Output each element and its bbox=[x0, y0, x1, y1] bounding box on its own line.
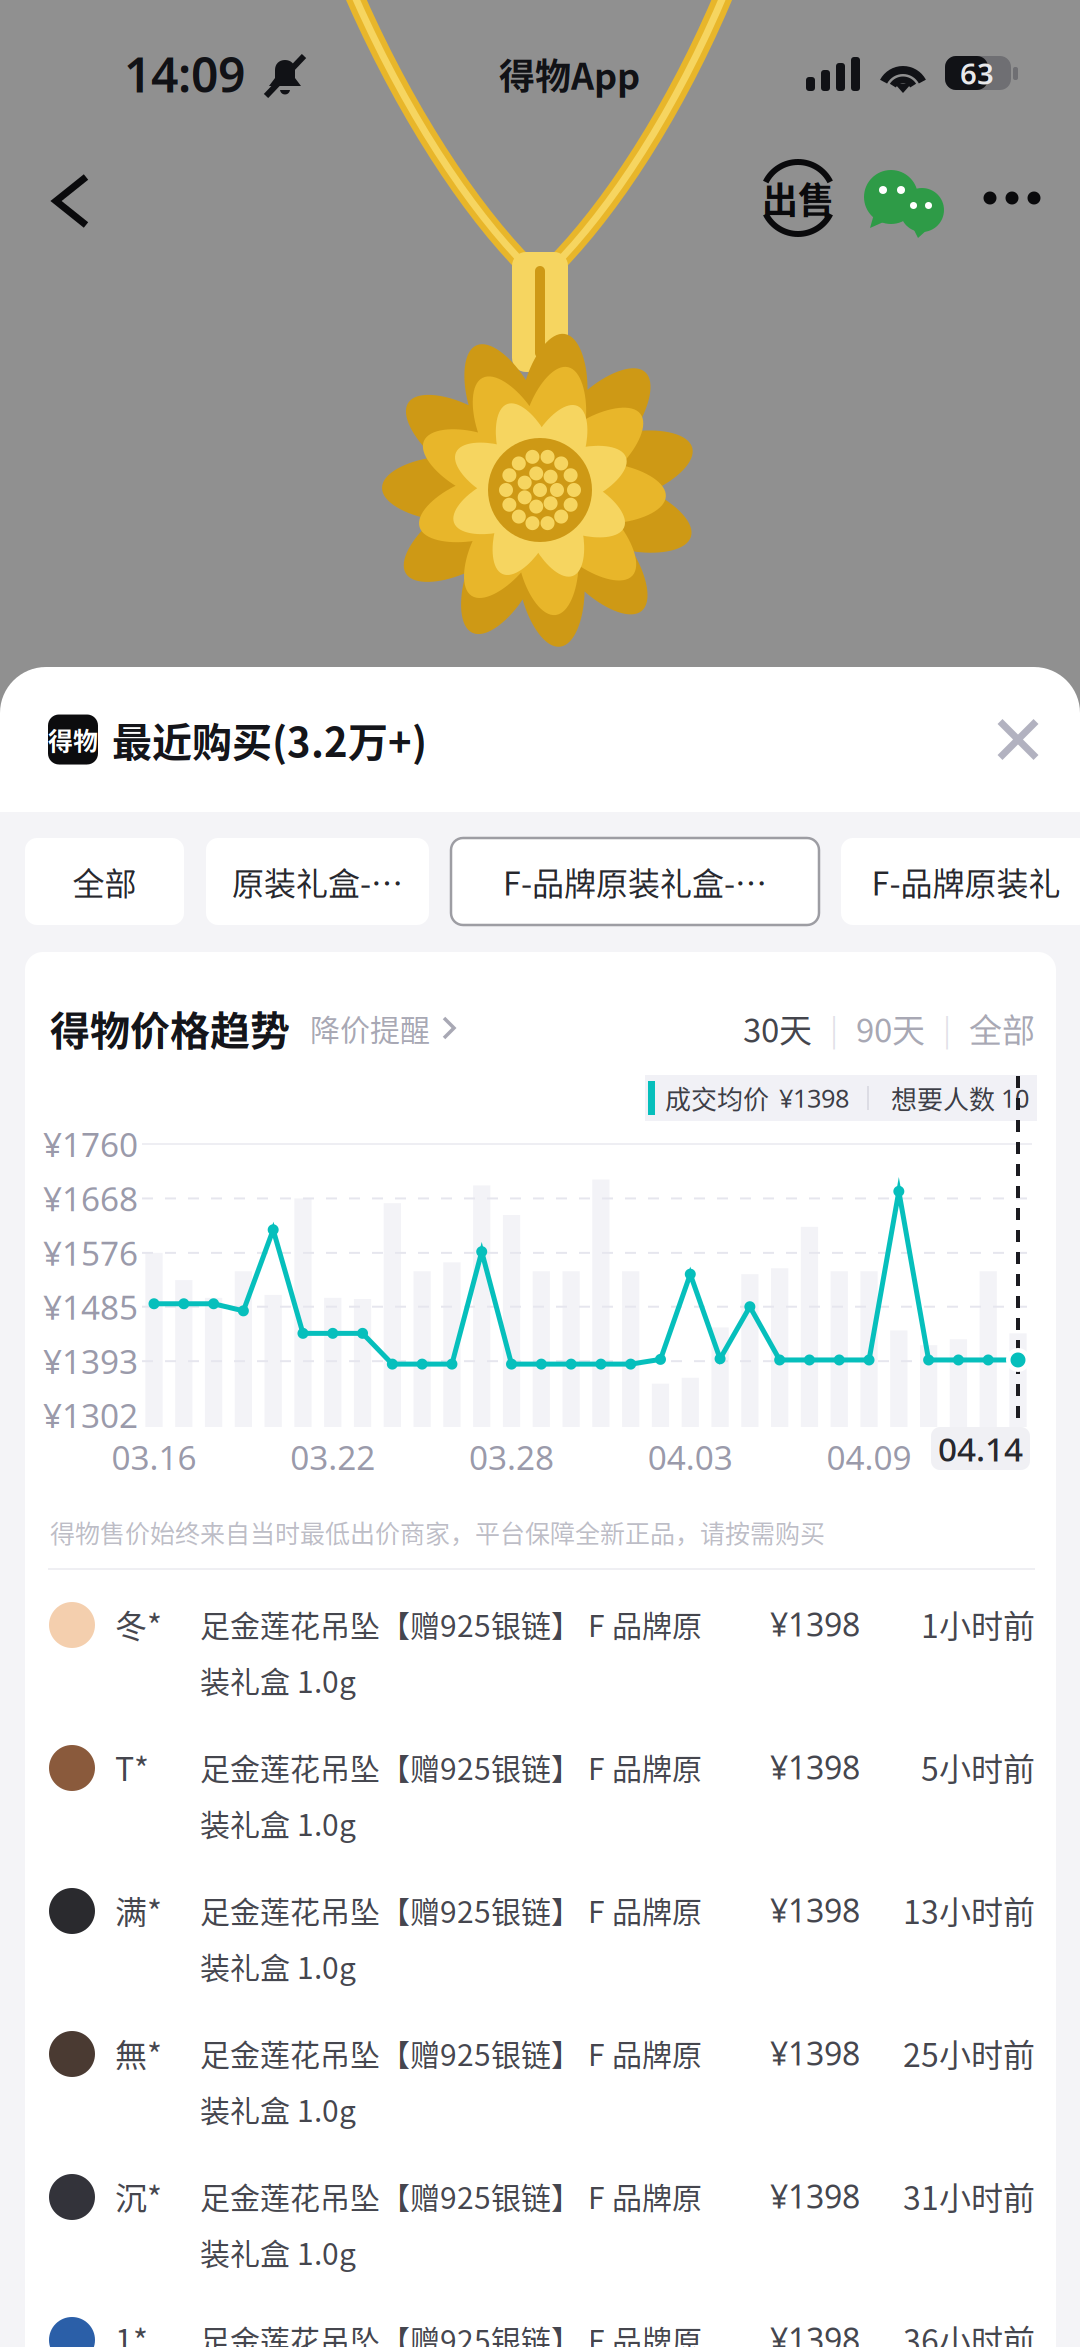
staticText: 無* bbox=[115, 2030, 162, 2076]
staticText: 想要人数 bbox=[891, 1079, 995, 1117]
staticText: 足金莲花吊坠【赠925银链】 F 品牌原 bbox=[200, 2031, 702, 2075]
staticText: 足金莲花吊坠【赠925银链】 F 品牌原 bbox=[200, 1745, 702, 1789]
staticText: 04.03 bbox=[648, 1435, 733, 1479]
staticText: 得物 bbox=[48, 721, 98, 758]
staticText: 04.14 bbox=[938, 1426, 1023, 1471]
button[interactable]: F-品牌原装礼盒-… bbox=[451, 838, 819, 925]
staticText: 1小时前 bbox=[921, 1601, 1035, 1647]
staticText: 30天 bbox=[743, 1004, 812, 1052]
staticText: 全部 bbox=[72, 858, 136, 905]
staticText: ¥1485 bbox=[43, 1285, 138, 1329]
staticText: 03.16 bbox=[111, 1435, 196, 1479]
button[interactable]: 满* bbox=[25, 1863, 1056, 2006]
staticText: 03.28 bbox=[469, 1435, 554, 1479]
staticText: 90天 bbox=[856, 1004, 925, 1052]
staticText: 最近购买(3.2万+) bbox=[112, 710, 427, 768]
button[interactable]: 沉* bbox=[25, 2149, 1056, 2292]
staticText: 04.09 bbox=[826, 1435, 911, 1479]
staticText: 得物售价始终来自当时最低出价商家，平台保障全新正品，请按需购买 bbox=[50, 1514, 825, 1550]
staticText: | bbox=[943, 1006, 951, 1050]
staticText: 得物价格趋势 bbox=[50, 999, 290, 1057]
button[interactable]: T* bbox=[25, 1720, 1056, 1863]
staticText: ¥1398 bbox=[770, 1603, 860, 1645]
staticText: 13小时前 bbox=[903, 1887, 1035, 1933]
staticText: ¥1393 bbox=[43, 1339, 138, 1383]
staticText: 31小时前 bbox=[903, 2173, 1035, 2219]
button[interactable]: F-品牌原装礼 bbox=[841, 838, 1080, 925]
staticText: 出售 bbox=[762, 172, 834, 224]
button[interactable]: 返回 bbox=[0, 146, 104, 250]
staticText: ¥1302 bbox=[43, 1393, 138, 1437]
staticText: ¥1398 bbox=[779, 1081, 849, 1115]
button[interactable]: 出售 bbox=[750, 150, 846, 246]
staticText: 足金莲花吊坠【赠925银链】 F 品牌原 bbox=[200, 2174, 702, 2218]
staticText: ¥1576 bbox=[43, 1231, 138, 1275]
staticText: 63 bbox=[960, 53, 994, 92]
button[interactable]: 降价提醒 bbox=[310, 1000, 458, 1056]
staticText: ¥1398 bbox=[770, 2318, 860, 2347]
staticText: 5小时前 bbox=[921, 1744, 1035, 1790]
staticText: 装礼盒 1.0g bbox=[200, 1801, 356, 1845]
staticText: 足金莲花吊坠【赠925银链】 F 品牌原 bbox=[200, 1602, 702, 1646]
staticText: ¥1668 bbox=[43, 1176, 138, 1221]
button[interactable]: 冬* bbox=[25, 1577, 1056, 1720]
staticText: 36小时前 bbox=[903, 2316, 1035, 2347]
staticText: 装礼盒 1.0g bbox=[200, 1944, 356, 1988]
staticText: 降价提醒 bbox=[310, 1006, 430, 1050]
staticText: ¥1398 bbox=[770, 1889, 860, 1931]
staticText: 全部 bbox=[969, 1004, 1035, 1052]
staticText: 14:09 bbox=[124, 42, 245, 106]
staticText: F-品牌原装礼 bbox=[871, 858, 1060, 905]
staticText: 原装礼盒-… bbox=[232, 858, 403, 905]
staticText: ¥1398 bbox=[770, 2175, 860, 2217]
staticText: 得物App bbox=[499, 48, 640, 100]
staticText: | bbox=[830, 1006, 838, 1050]
staticText: ¥1760 bbox=[43, 1122, 138, 1166]
staticText: F-品牌原装礼盒-… bbox=[503, 858, 767, 905]
button[interactable]: 全部 bbox=[25, 838, 184, 925]
staticText: T* bbox=[115, 1744, 149, 1790]
staticText: 沉* bbox=[115, 2173, 162, 2219]
staticText: 装礼盒 1.0g bbox=[200, 1658, 356, 1702]
staticText: 装礼盒 1.0g bbox=[200, 2087, 356, 2131]
button[interactable]: 1* bbox=[25, 2292, 1056, 2347]
staticText: 满* bbox=[115, 1887, 162, 1933]
staticText: 冬* bbox=[115, 1601, 162, 1647]
staticText: 1* bbox=[115, 2316, 148, 2347]
button[interactable]: 無* bbox=[25, 2006, 1056, 2149]
staticText: ¥1398 bbox=[770, 2032, 860, 2074]
staticText: 成交均价 bbox=[665, 1079, 769, 1117]
button[interactable]: 微信 bbox=[862, 150, 954, 246]
staticText: ¥1398 bbox=[770, 1746, 860, 1788]
staticText: 足金莲花吊坠【赠925银链】 F 品牌原 bbox=[200, 2317, 702, 2347]
button[interactable]: 原装礼盒-… bbox=[206, 838, 429, 925]
staticText: 10 bbox=[1001, 1081, 1029, 1115]
staticText: 装礼盒 1.0g bbox=[200, 2230, 356, 2274]
button[interactable]: 更多 bbox=[964, 150, 1060, 246]
staticText: 足金莲花吊坠【赠925银链】 F 品牌原 bbox=[200, 1888, 702, 1932]
staticText: 03.22 bbox=[290, 1435, 375, 1479]
button[interactable]: 关闭 bbox=[974, 695, 1062, 783]
staticText: 25小时前 bbox=[903, 2030, 1035, 2076]
